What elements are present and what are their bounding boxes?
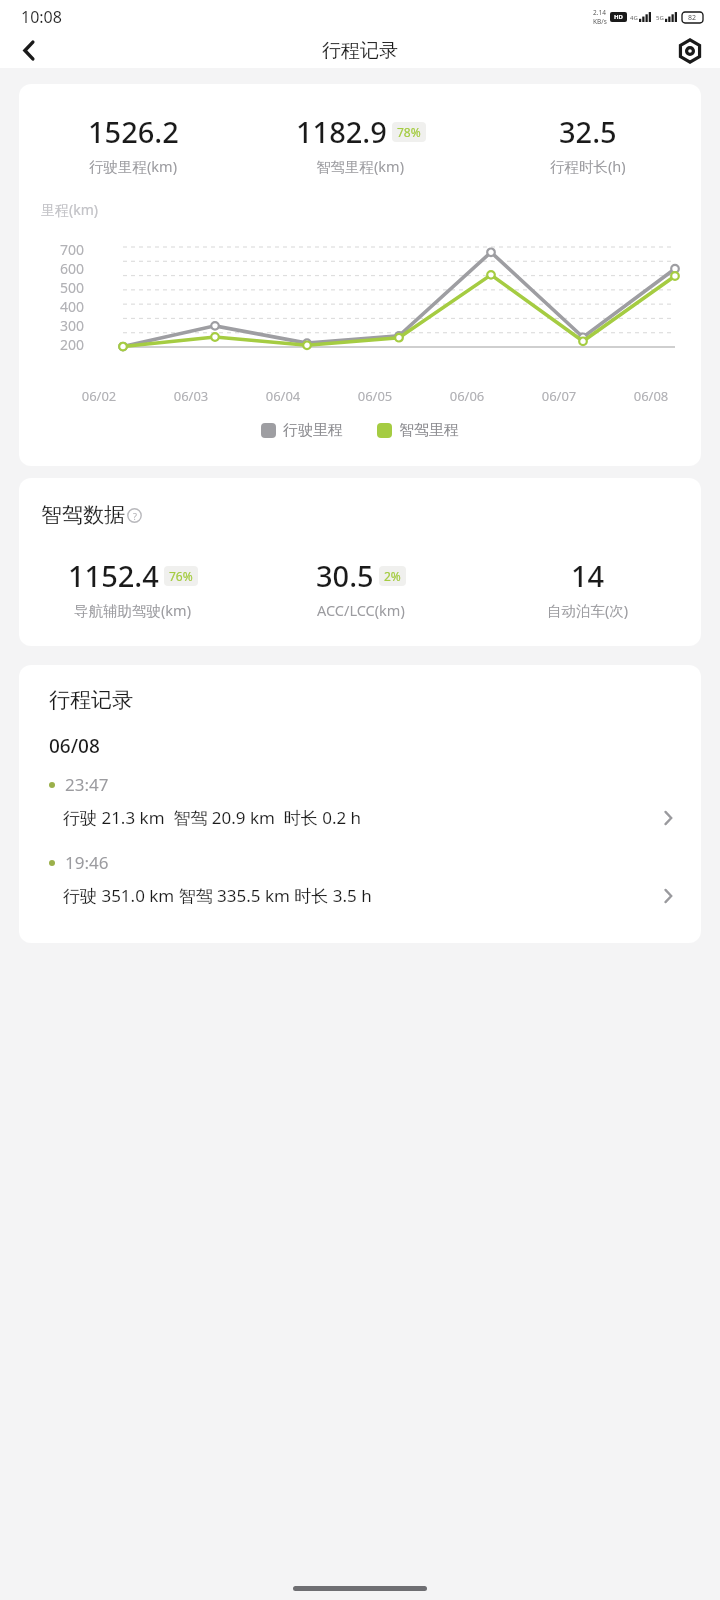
staticText: 30.5 bbox=[316, 556, 374, 595]
button[interactable]: 19:46 bbox=[19, 837, 701, 915]
staticText: 300 bbox=[60, 316, 85, 335]
staticText: 06/02 bbox=[53, 387, 145, 405]
staticText: 行驶里程(km) bbox=[89, 156, 178, 176]
staticText: 06/07 bbox=[513, 387, 605, 405]
staticText: 19:46 bbox=[65, 851, 109, 874]
staticText: 06/03 bbox=[145, 387, 237, 405]
staticText: ACC/LCC(km) bbox=[317, 600, 405, 620]
staticText: 行驶里程 bbox=[283, 421, 343, 440]
staticText: 06/05 bbox=[329, 387, 421, 405]
staticText: 06/08 bbox=[49, 733, 100, 759]
staticText: 行程记录 bbox=[49, 687, 133, 713]
staticText: 23:47 bbox=[65, 773, 109, 796]
staticText: 智驾里程(km) bbox=[316, 156, 405, 176]
staticText: 行程时长(h) bbox=[550, 156, 626, 176]
staticText: 里程(km) bbox=[41, 200, 98, 219]
staticText: KB/s bbox=[593, 17, 607, 26]
staticText: 06/08 bbox=[605, 387, 697, 405]
staticText: 06/04 bbox=[237, 387, 329, 405]
staticText: 2.14 bbox=[593, 8, 606, 17]
staticText: 行程记录 bbox=[322, 39, 398, 63]
staticText: 200 bbox=[60, 335, 85, 354]
staticText: 4G bbox=[630, 14, 638, 22]
staticText: 2% bbox=[384, 568, 401, 584]
staticText: 76% bbox=[169, 568, 193, 584]
staticText: 1182.9 bbox=[296, 112, 387, 151]
staticText: 5G bbox=[656, 14, 664, 22]
staticText: ? bbox=[133, 510, 137, 522]
button[interactable]: Back bbox=[6, 33, 52, 68]
staticText: 500 bbox=[60, 278, 85, 297]
staticText: 78% bbox=[397, 124, 421, 140]
staticText: 行驶 21.3 km 智驾 20.9 km 时长 0.2 h bbox=[63, 806, 659, 829]
staticText: 导航辅助驾驶(km) bbox=[74, 600, 192, 620]
staticText: 智驾里程 bbox=[399, 421, 459, 440]
staticText: 14 bbox=[571, 556, 605, 595]
staticText: 10:08 bbox=[21, 6, 62, 28]
staticText: 1152.4 bbox=[68, 556, 159, 595]
button[interactable]: Settings bbox=[667, 33, 713, 68]
staticText: 82 bbox=[688, 13, 697, 23]
staticText: 600 bbox=[60, 259, 85, 278]
button[interactable]: Help bbox=[127, 508, 142, 523]
staticText: 自动泊车(次) bbox=[547, 600, 629, 620]
staticText: 06/06 bbox=[421, 387, 513, 405]
staticText: 智驾数据 bbox=[41, 502, 125, 528]
staticText: 700 bbox=[60, 240, 85, 259]
button[interactable]: 23:47 bbox=[19, 759, 701, 837]
staticText: 1526.2 bbox=[88, 112, 179, 151]
staticText: 行驶 351.0 km 智驾 335.5 km 时长 3.5 h bbox=[63, 884, 659, 907]
staticText: HD bbox=[614, 13, 623, 21]
staticText: 32.5 bbox=[559, 112, 617, 151]
staticText: 400 bbox=[60, 297, 85, 316]
